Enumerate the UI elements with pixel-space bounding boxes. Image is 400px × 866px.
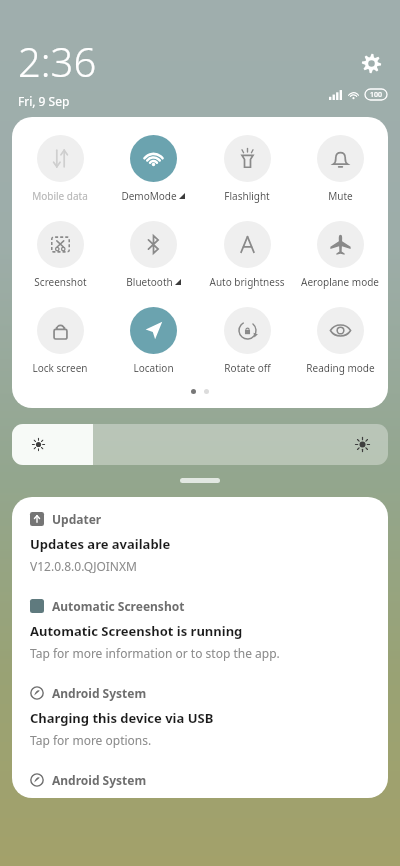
staticText: Flashlight <box>224 189 270 203</box>
staticText: Automatic Screenshot <box>52 598 185 614</box>
staticText: Android System <box>52 772 147 788</box>
button[interactable]: Mute <box>294 133 386 205</box>
button[interactable]: DemoMode <box>107 133 199 205</box>
staticText: Tap for more information or to stop the … <box>30 645 280 661</box>
button[interactable]: Screenshot <box>14 219 106 291</box>
staticText: Bluetooth <box>126 275 173 289</box>
button[interactable]: Rotate off <box>201 305 293 377</box>
button[interactable]: Automatic Screenshot <box>12 584 388 671</box>
staticText: 2:36 <box>18 34 97 88</box>
staticText: Reading mode <box>306 361 375 375</box>
button[interactable]: Mobile data <box>14 133 106 205</box>
button[interactable]: Location <box>107 305 199 377</box>
button[interactable]: Brightness <box>12 424 388 465</box>
staticText: Rotate off <box>224 361 271 375</box>
button[interactable]: Reading mode <box>294 305 386 377</box>
staticText: Updater <box>52 511 102 527</box>
staticText: DemoMode <box>121 189 177 203</box>
staticText: Screenshot <box>34 275 87 289</box>
staticText: Automatic Screenshot is running <box>30 622 243 640</box>
staticText: Mute <box>328 189 353 203</box>
staticText: Mobile data <box>32 189 88 203</box>
button[interactable]: Updater <box>12 497 388 584</box>
staticText: Lock screen <box>32 361 88 375</box>
button[interactable]: Android System <box>12 671 388 758</box>
staticText: Tap for more options. <box>30 732 152 748</box>
button[interactable]: Bluetooth <box>107 219 199 291</box>
staticText: Android System <box>52 685 147 701</box>
staticText: Updates are available <box>30 535 171 553</box>
staticText: Charging this device via USB <box>30 709 214 727</box>
button[interactable]: Settings <box>356 48 386 78</box>
staticText: 100 <box>370 90 383 100</box>
staticText: Fri, 9 Sep <box>18 93 70 109</box>
button[interactable]: Auto brightness <box>201 219 293 291</box>
staticText: Location <box>133 361 174 375</box>
button[interactable]: Android System <box>12 758 388 798</box>
button[interactable]: Flashlight <box>201 133 293 205</box>
button[interactable]: Lock screen <box>14 305 106 377</box>
staticText: V12.0.8.0.QJOINXM <box>30 558 137 574</box>
staticText: Aeroplane mode <box>301 275 379 289</box>
button[interactable]: Aeroplane mode <box>294 219 386 291</box>
staticText: Auto brightness <box>209 275 285 289</box>
